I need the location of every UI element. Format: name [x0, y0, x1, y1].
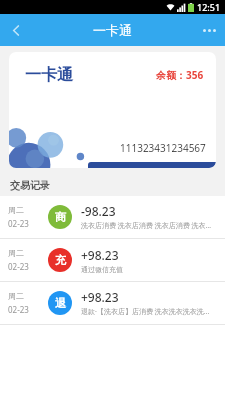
staticText: 02-23	[8, 218, 29, 229]
staticText: 周二	[8, 291, 24, 301]
staticText: 周二	[8, 205, 24, 215]
staticText: 111323431234567	[120, 141, 206, 155]
button[interactable]: 周二	[0, 282, 225, 324]
staticText: 退	[55, 296, 66, 310]
button[interactable]: 周二	[0, 196, 225, 238]
staticText: 周二	[8, 248, 24, 258]
staticText: 余额：356	[156, 68, 204, 82]
staticText: 一卡通	[93, 22, 132, 38]
button[interactable]: More options	[193, 14, 225, 46]
staticText: 一卡通	[25, 65, 73, 85]
staticText: 退款·【洗衣店】店消费 洗衣洗衣洗衣洗…	[81, 307, 210, 317]
button[interactable]: 一卡通	[9, 52, 216, 168]
button[interactable]: 周二	[0, 239, 225, 281]
staticText: 通过微信充值	[81, 265, 123, 274]
button[interactable]: Back	[0, 14, 32, 46]
staticText: 交易记录	[10, 179, 50, 192]
staticText: 商	[55, 210, 66, 224]
staticText: +98.23	[81, 247, 119, 263]
staticText: 充	[55, 253, 66, 267]
staticText: 12:51	[197, 1, 221, 13]
staticText: +98.23	[81, 289, 119, 305]
staticText: 洗衣店消费 洗衣店消费 洗衣店消费 洗衣…	[81, 221, 211, 231]
staticText: 02-23	[8, 261, 29, 272]
staticText: -98.23	[81, 203, 116, 219]
staticText: 02-23	[8, 304, 29, 315]
